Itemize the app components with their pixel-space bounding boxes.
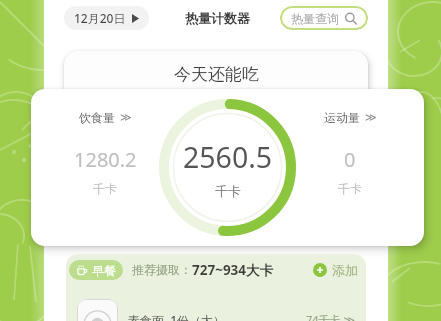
staticText: 运动量 [324,110,360,125]
staticText: 727~934大卡 [192,261,274,279]
staticText: 推荐摄取： [132,262,192,277]
button[interactable]: 热量查询 [280,6,368,30]
button[interactable]: 12月20日 [64,6,149,30]
button[interactable]: 早餐 [69,260,123,280]
staticText: 素食面 1份（大） [128,312,226,321]
staticText: 饮食量 [79,110,115,125]
staticText: 74千卡 ≫ [306,312,355,321]
button[interactable]: 饮食量 [50,110,160,196]
staticText: ≫ [365,111,377,124]
staticText: 热量查询 [291,11,339,26]
staticText: 千卡 [338,181,362,196]
staticText: 千卡 [93,181,117,196]
button[interactable]: 运动量 [295,110,405,196]
staticText: 添加 [332,262,358,278]
staticText: 1280.2 [74,146,137,173]
staticText: 12月20日 [74,10,126,26]
button[interactable] [77,299,118,321]
button[interactable]: 添加 [313,262,358,278]
staticText: 热量计数器 [185,10,250,26]
staticText: 0 [344,146,356,173]
staticText: 早餐 [92,263,116,278]
staticText: ≫ [120,111,132,124]
staticText: 千卡 [215,183,241,199]
staticText: 今天还能吃 [174,64,259,85]
staticText: 2560.5 [183,138,273,177]
